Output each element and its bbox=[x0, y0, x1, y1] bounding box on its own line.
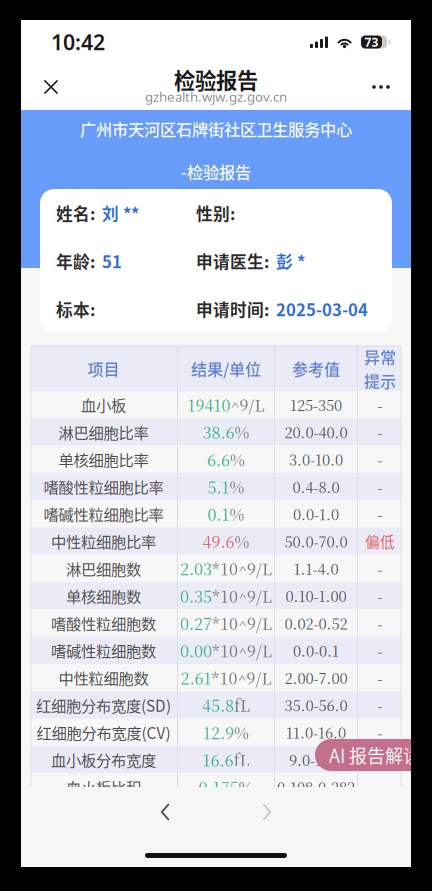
staticText: *10^9/L bbox=[212, 584, 272, 607]
staticText: 12.9 bbox=[203, 721, 234, 744]
staticText: gzhealth.wjw.gz.gov.cn bbox=[145, 88, 287, 105]
staticText: *10^9/L bbox=[212, 557, 272, 580]
staticText: 0.10-1.00 bbox=[285, 585, 346, 606]
button[interactable]: Forward bbox=[240, 792, 294, 832]
staticText: 中性粒细胞数 bbox=[58, 666, 148, 689]
staticText: 嗜碱性粒细胞数 bbox=[51, 639, 156, 661]
staticText: % bbox=[238, 775, 253, 798]
staticText: 异常 bbox=[364, 345, 396, 368]
staticText: 结果/单位 bbox=[191, 357, 261, 380]
staticText: % bbox=[229, 502, 244, 525]
staticText: AI 报告解读 bbox=[329, 742, 421, 768]
staticText: 嗜酸性粒细胞比率 bbox=[43, 475, 163, 498]
staticText: 0.175 bbox=[198, 775, 238, 798]
staticText: fL bbox=[234, 693, 250, 716]
staticText: 申请时间: bbox=[196, 297, 269, 321]
staticText: 51 bbox=[102, 249, 122, 273]
staticText: 2.03 bbox=[180, 557, 212, 580]
staticText: 年龄: bbox=[56, 249, 95, 273]
staticText: 参考值 bbox=[292, 357, 340, 380]
staticText: - bbox=[377, 449, 382, 470]
staticText: - bbox=[377, 503, 382, 524]
staticText: 0.35 bbox=[180, 584, 212, 607]
staticText: 0.0-1.0 bbox=[293, 503, 339, 524]
staticText: 16.6 bbox=[202, 748, 233, 771]
staticText: - bbox=[377, 667, 382, 688]
staticText: - bbox=[377, 722, 382, 743]
staticText: 0.00 bbox=[180, 639, 212, 662]
staticText: 0.27 bbox=[180, 612, 212, 635]
staticText: 项目 bbox=[87, 357, 119, 380]
staticText: - bbox=[377, 612, 382, 634]
button[interactable]: Close bbox=[29, 65, 73, 109]
staticText: 单核细胞数 bbox=[66, 585, 141, 607]
staticText: 0.0-0.1 bbox=[293, 640, 339, 661]
staticText: 红细胞分布宽度(SD) bbox=[36, 694, 171, 716]
staticText: 125-350 bbox=[290, 394, 342, 415]
staticText: % bbox=[230, 448, 245, 471]
staticText: % bbox=[229, 475, 244, 498]
staticText: 49.6 bbox=[202, 530, 234, 553]
staticText: 0.02-0.52 bbox=[284, 612, 347, 634]
staticText: 偏低 bbox=[365, 530, 395, 552]
staticText: 提示 bbox=[364, 369, 396, 392]
staticText: 淋巴细胞数 bbox=[66, 557, 141, 579]
staticText: 红细胞分布宽度(CV) bbox=[36, 721, 170, 743]
staticText: 彭 * bbox=[276, 249, 305, 273]
button[interactable]: Back bbox=[138, 792, 192, 832]
staticText: 35.0-56.0 bbox=[284, 694, 347, 715]
staticText: 性别: bbox=[196, 201, 235, 225]
staticText: 2025-03-04 bbox=[276, 297, 368, 321]
staticText: - bbox=[377, 394, 382, 415]
staticText: 6.6 bbox=[207, 448, 230, 471]
staticText: 血小板 bbox=[81, 393, 126, 416]
staticText: 广州市天河区石牌街社区卫生服务中心 bbox=[80, 117, 352, 141]
staticText: 38.6 bbox=[202, 420, 234, 443]
staticText: 1.1-4.0 bbox=[293, 558, 338, 579]
staticText: 单核细胞比率 bbox=[58, 448, 148, 470]
staticText: 标本: bbox=[56, 297, 95, 321]
staticText: 姓名: bbox=[56, 201, 95, 225]
staticText: - bbox=[377, 694, 382, 715]
staticText: 0.108-0.282 bbox=[277, 776, 355, 797]
staticText: 3.0-10.0 bbox=[289, 449, 343, 470]
staticText: 45.8 bbox=[202, 693, 234, 716]
staticText: 刘 ** bbox=[102, 201, 139, 225]
staticText: 2.00-7.00 bbox=[284, 667, 347, 688]
staticText: - bbox=[377, 749, 382, 770]
button[interactable]: AI 报告解读 bbox=[315, 739, 432, 771]
staticText: ^9/L bbox=[230, 393, 264, 416]
staticText: - bbox=[377, 476, 382, 497]
staticText: *10^9/L bbox=[212, 639, 272, 662]
staticText: 嗜碱性粒细胞比率 bbox=[43, 503, 163, 525]
staticText: 嗜酸性粒细胞数 bbox=[51, 612, 156, 634]
staticText: 中性粒细胞比率 bbox=[51, 530, 156, 552]
staticText: *10^9/L bbox=[211, 666, 271, 689]
staticText: -检验报告 bbox=[181, 160, 251, 183]
staticText: 20.0-40.0 bbox=[284, 421, 347, 442]
staticText: % bbox=[234, 530, 249, 553]
staticText: 血小板分布宽度 bbox=[51, 748, 156, 771]
staticText: 2.61 bbox=[180, 666, 211, 689]
staticText: 73 bbox=[364, 34, 378, 50]
button[interactable]: More bbox=[359, 65, 403, 109]
staticText: 0.4-8.0 bbox=[292, 476, 339, 497]
staticText: 血小板比积 bbox=[66, 776, 141, 798]
staticText: - bbox=[377, 585, 382, 606]
staticText: 申请医生: bbox=[196, 249, 269, 273]
staticText: 9.0-17.0 bbox=[289, 749, 343, 770]
staticText: - bbox=[377, 640, 382, 661]
staticText: fL bbox=[233, 748, 249, 771]
staticText: - bbox=[377, 558, 382, 579]
staticText: 19410 bbox=[187, 393, 230, 416]
staticText: 0.1 bbox=[207, 502, 229, 525]
staticText: 检验报告 bbox=[174, 64, 258, 95]
staticText: % bbox=[234, 420, 249, 443]
staticText: *10^9/L bbox=[212, 612, 272, 635]
staticText: 5.1 bbox=[207, 475, 229, 498]
staticText: % bbox=[234, 721, 249, 744]
staticText: 50.0-70.0 bbox=[284, 531, 347, 552]
staticText: 淋巴细胞比率 bbox=[58, 421, 148, 443]
staticText: 10:42 bbox=[51, 28, 105, 56]
